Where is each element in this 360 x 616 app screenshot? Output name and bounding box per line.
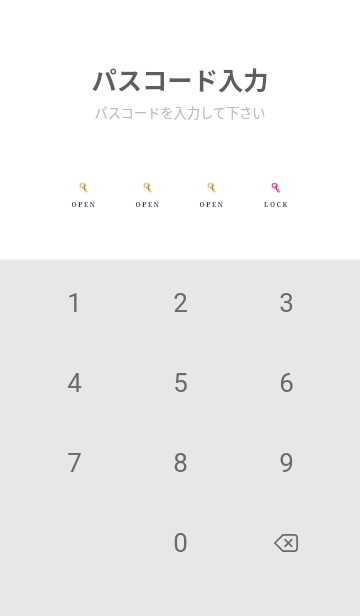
button[interactable]: 2 [127, 263, 233, 343]
button[interactable]: OPEN [180, 181, 244, 209]
button[interactable]: OPEN [116, 181, 180, 209]
button[interactable]: 7 [21, 423, 127, 503]
other: OPEN [141, 181, 155, 195]
button[interactable]: LOCK [244, 181, 308, 209]
staticText: LOCK [264, 200, 289, 209]
staticText: パスコードを入力して下さい [94, 103, 266, 122]
staticText: 1 [67, 288, 82, 318]
staticText: 7 [67, 448, 82, 478]
staticText: 8 [173, 448, 188, 478]
button[interactable]: 4 [21, 343, 127, 423]
staticText: OPEN [135, 200, 161, 209]
button[interactable]: 5 [127, 343, 233, 423]
button[interactable]: 9 [233, 423, 339, 503]
staticText: 9 [279, 448, 294, 478]
button[interactable]: 1 [21, 263, 127, 343]
staticText: OPEN [71, 200, 97, 209]
other: OPEN [77, 181, 91, 195]
staticText: 2 [173, 288, 188, 318]
staticText: 6 [279, 368, 294, 398]
staticText: 5 [173, 368, 188, 398]
button[interactable]: Delete [233, 503, 339, 583]
staticText: 4 [67, 368, 82, 398]
other: OPEN [205, 181, 219, 195]
button[interactable]: 6 [233, 343, 339, 423]
button[interactable]: 3 [233, 263, 339, 343]
button[interactable]: 8 [127, 423, 233, 503]
button[interactable]: 0 [127, 503, 233, 583]
staticText: パスコード入力 [91, 61, 269, 98]
button[interactable]: OPEN [52, 181, 116, 209]
staticText: 0 [173, 528, 188, 558]
other: LOCK [269, 181, 283, 195]
staticText: 3 [279, 288, 294, 318]
staticText: OPEN [199, 200, 225, 209]
